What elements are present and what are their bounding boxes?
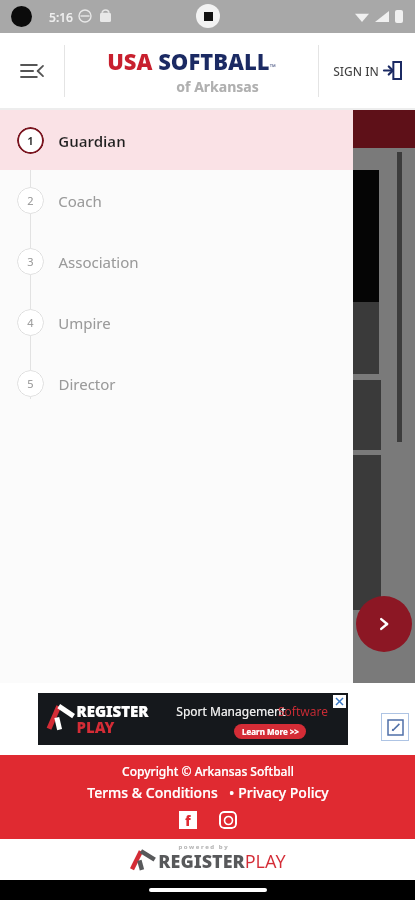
- staticText: 3: [27, 254, 34, 269]
- staticText: Coach: [58, 191, 102, 211]
- staticText: REGISTER: [76, 701, 149, 721]
- button[interactable]: Privacy Policy: [238, 783, 329, 802]
- staticText: USA SOFTBALL™: [107, 46, 276, 76]
- staticText: 5:16: [49, 9, 73, 25]
- staticText: Association: [58, 252, 139, 272]
- staticText: REGISTERPLAY: [158, 849, 286, 874]
- button[interactable]: Instagram: [219, 811, 237, 829]
- staticText: 2: [27, 193, 34, 208]
- button[interactable]: Facebook: [179, 811, 197, 829]
- button[interactable]: REGISTER: [38, 693, 348, 745]
- staticText: p o w e r e d b y: [178, 843, 228, 851]
- staticText: 1: [27, 133, 34, 148]
- staticText: of Arkansas: [176, 77, 259, 96]
- staticText: PLAY: [76, 717, 115, 737]
- staticText: Privacy Policy: [238, 783, 329, 802]
- button[interactable]: Edit: [381, 713, 409, 741]
- button[interactable]: 2: [0, 170, 353, 231]
- staticText: SIGN IN: [333, 63, 379, 79]
- button[interactable]: 3: [0, 231, 353, 292]
- button[interactable]: SIGN IN: [319, 33, 415, 108]
- button[interactable]: Close ad: [333, 695, 346, 708]
- staticText: f: [185, 811, 191, 829]
- button[interactable]: 5: [0, 353, 353, 414]
- staticText: Learn More >>: [242, 726, 299, 737]
- button[interactable]: Learn More >>: [234, 724, 306, 739]
- staticText: Sport Management: [176, 703, 286, 719]
- staticText: Copyright © Arkansas Softball: [122, 763, 294, 779]
- staticText: 5: [27, 376, 34, 391]
- staticText: Software: [278, 703, 328, 719]
- button[interactable]: 4: [0, 292, 353, 353]
- staticText: Guardian: [58, 131, 126, 151]
- staticText: Director: [58, 374, 116, 394]
- staticText: Terms & Conditions: [87, 783, 218, 802]
- staticText: Umpire: [58, 313, 111, 333]
- button[interactable]: Terms & Conditions: [87, 783, 218, 802]
- staticText: •: [218, 783, 238, 802]
- button[interactable]: Menu: [0, 33, 64, 108]
- staticText: 4: [27, 315, 34, 330]
- button[interactable]: USA SOFTBALL™: [65, 33, 318, 108]
- button[interactable]: Next: [356, 596, 412, 652]
- button[interactable]: 1: [0, 110, 353, 170]
